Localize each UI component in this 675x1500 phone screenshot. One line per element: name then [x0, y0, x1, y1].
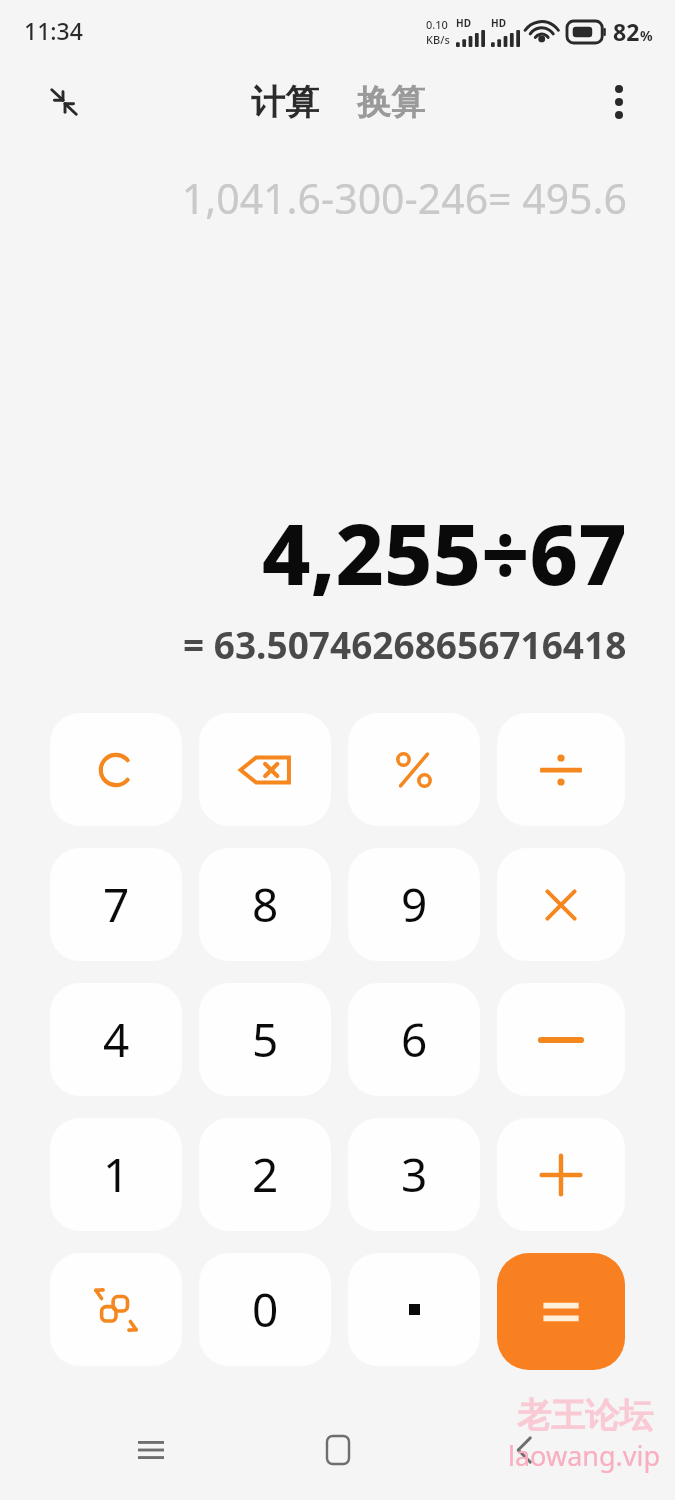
button[interactable]: 3 — [348, 1118, 480, 1231]
staticText: 1,041.6-300-246= 495.6 — [181, 170, 627, 226]
staticText: HD — [456, 16, 471, 30]
button[interactable]: plus — [497, 1118, 625, 1231]
button[interactable]: 6 — [348, 983, 480, 1096]
button[interactable] — [348, 1253, 480, 1366]
button[interactable]: 1,041.6-300-246= 495.6 — [0, 170, 675, 226]
staticText: = 63.50746268656716418 — [183, 619, 627, 669]
button[interactable]: 0 — [199, 1253, 331, 1366]
button[interactable]: Back — [488, 1414, 560, 1486]
staticText: 9 — [401, 873, 428, 936]
button[interactable]: 2 — [199, 1118, 331, 1231]
button[interactable]: minus — [497, 983, 625, 1096]
button[interactable]: 9 — [348, 848, 480, 961]
staticText: 7 — [103, 873, 130, 936]
staticText: 4,255÷67 — [262, 495, 627, 609]
staticText: HD — [491, 16, 506, 30]
button[interactable]: clear — [50, 713, 182, 826]
button[interactable]: 7 — [50, 848, 182, 961]
button[interactable]: 换算 — [351, 77, 431, 128]
button[interactable]: backspace — [199, 713, 331, 826]
staticText: 1 — [103, 1143, 130, 1206]
staticText: 0.10 — [426, 17, 448, 32]
staticText: % — [640, 26, 653, 45]
button[interactable]: percent — [348, 713, 480, 826]
staticText: 换算 — [357, 81, 425, 124]
button[interactable]: more functions — [50, 1253, 182, 1366]
staticText: KB/s — [426, 32, 450, 47]
staticText: 2 — [252, 1143, 279, 1206]
staticText: 8 — [252, 873, 279, 936]
button[interactable]: 4 — [50, 983, 182, 1096]
button[interactable]: divide — [497, 713, 625, 826]
button[interactable]: 1 — [50, 1118, 182, 1231]
staticText: 4 — [103, 1008, 130, 1071]
staticText: 6 — [401, 1008, 428, 1071]
staticText: laowang.vip — [508, 1437, 661, 1474]
button[interactable]: Recent apps — [115, 1414, 187, 1486]
staticText: 82 — [613, 16, 640, 47]
button[interactable]: Home — [302, 1414, 374, 1486]
staticText: 0 — [252, 1278, 279, 1341]
staticText: 3 — [401, 1143, 428, 1206]
staticText: 老王论坛 — [517, 1394, 653, 1437]
button[interactable]: 计算 — [245, 77, 325, 128]
staticText: 11:34 — [24, 15, 83, 46]
staticText: 计算 — [251, 81, 319, 124]
button[interactable]: More options — [597, 80, 641, 124]
button[interactable]: equals — [497, 1253, 625, 1370]
button[interactable]: 8 — [199, 848, 331, 961]
staticText: 5 — [252, 1008, 279, 1071]
button[interactable]: Collapse — [42, 80, 86, 124]
button[interactable]: 5 — [199, 983, 331, 1096]
button[interactable]: multiply — [497, 848, 625, 961]
